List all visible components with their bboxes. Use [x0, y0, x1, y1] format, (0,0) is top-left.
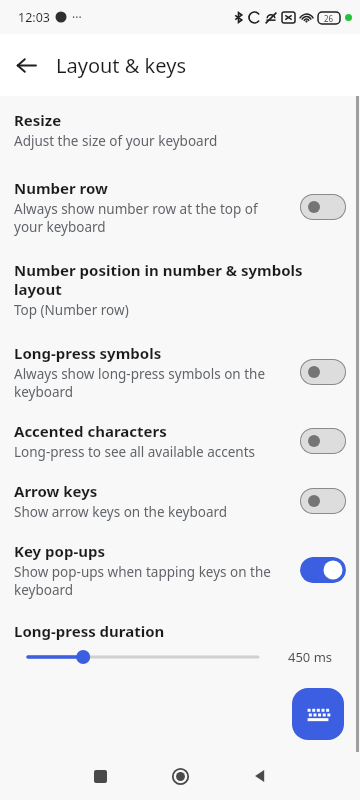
button[interactable]: Resize	[0, 106, 360, 156]
staticText: Always show long-press symbols on the ke…	[14, 365, 290, 401]
staticText: 12:03	[18, 9, 50, 26]
staticText: Adjust the size of your keyboard	[14, 132, 218, 150]
button[interactable]: Arrow keys	[0, 479, 360, 525]
button[interactable]: Home	[160, 756, 200, 796]
button[interactable]: Key pop-ups	[0, 539, 360, 603]
staticText: Top (Number row)	[14, 301, 129, 319]
button[interactable]: Accented characters	[0, 419, 360, 465]
staticText: Arrow keys	[14, 481, 98, 501]
staticText: ···	[72, 9, 82, 25]
button[interactable]: Open keyboard	[292, 688, 344, 740]
button[interactable]: Toggle off	[300, 428, 346, 454]
button[interactable]: Number row	[0, 176, 360, 240]
staticText: Long-press to see all available accents	[14, 443, 255, 461]
button[interactable]: Toggle off	[300, 359, 346, 385]
button[interactable]: Toggle off	[300, 194, 346, 220]
staticText: 26	[324, 13, 334, 24]
staticText: Show pop-ups when tapping keys on the ke…	[14, 563, 290, 599]
staticText: Show arrow keys on the keyboard	[14, 503, 228, 521]
staticText: Resize	[14, 110, 62, 130]
button[interactable]: Long-press duration	[0, 621, 360, 667]
staticText: Long-press symbols	[14, 343, 162, 363]
button[interactable]: Toggle on	[300, 557, 346, 583]
staticText: Layout & keys	[56, 52, 186, 79]
button[interactable]: Toggle off	[300, 488, 346, 514]
button[interactable]: Recents	[80, 756, 120, 796]
staticText: 450 ms	[274, 648, 346, 666]
staticText: Long-press duration	[14, 621, 165, 641]
staticText: Key pop-ups	[14, 541, 105, 561]
button[interactable]: Number position in number & symbols layo…	[0, 258, 360, 323]
staticText: Accented characters	[14, 421, 167, 441]
button[interactable]: Long-press symbols	[0, 341, 360, 405]
button[interactable]: Back	[8, 47, 44, 83]
staticText: Always show number row at the top of you…	[14, 200, 290, 236]
staticText: Number row	[14, 178, 108, 198]
staticText: Number position in number & symbols layo…	[14, 260, 336, 299]
button[interactable]: Back	[240, 756, 280, 796]
